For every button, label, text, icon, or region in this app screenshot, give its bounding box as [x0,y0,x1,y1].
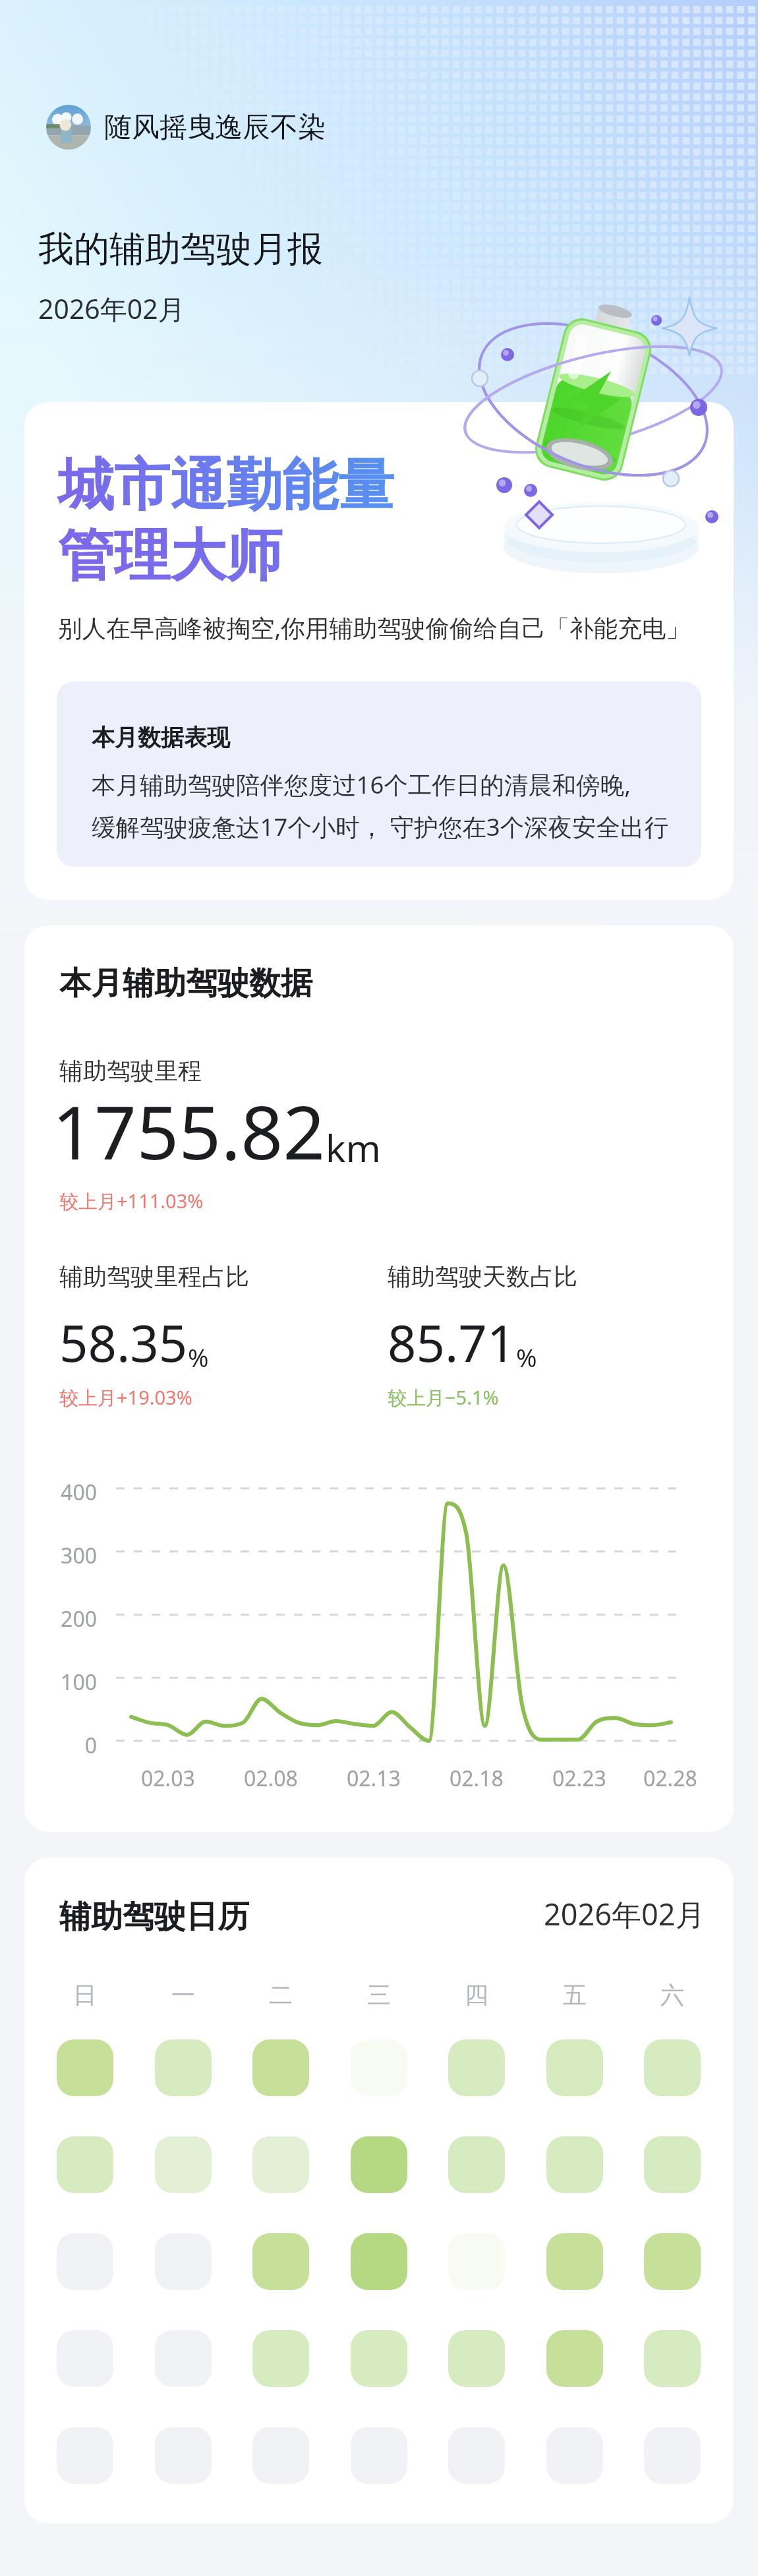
button[interactable] [448,2136,505,2193]
button[interactable] [252,2039,309,2096]
staticText: 较上月−5.1% [388,1384,499,1411]
staticText: 辅助驾驶里程占比 [59,1262,249,1291]
staticText: 辅助驾驶日历 [59,1897,249,1937]
staticText: 三 [367,1980,391,2010]
button[interactable]: 随风摇曳逸辰不染 [46,105,326,150]
staticText: 85.71 [388,1308,516,1377]
button[interactable] [57,2330,113,2387]
staticText: 缓解驾驶疲惫达17个小时， 守护您在3个深夜安全出行 [92,810,669,843]
staticText: 五 [563,1980,587,2010]
staticText: 02.28 [643,1764,697,1793]
button[interactable] [351,2136,407,2193]
staticText: 100 [24,1668,97,1697]
staticText: 四 [465,1980,488,2010]
staticText: 一 [171,1980,195,2010]
staticText: 本月辅助驾驶数据 [59,964,312,1003]
button[interactable] [644,2136,701,2193]
button[interactable] [546,2330,603,2387]
button[interactable] [546,2427,603,2484]
button[interactable] [351,2427,407,2484]
staticText: 较上月+19.03% [59,1384,192,1411]
button[interactable] [155,2136,212,2193]
button[interactable] [351,2330,407,2387]
staticText: 02.13 [347,1764,401,1793]
button[interactable] [252,2427,309,2484]
staticText: 辅助驾驶天数占比 [388,1262,577,1291]
button[interactable] [448,2330,505,2387]
button[interactable] [644,2427,701,2484]
staticText: 本月辅助驾驶陪伴您度过16个工作日的清晨和傍晚, [92,768,631,801]
staticText: 2026年02月 [544,1894,705,1934]
button[interactable] [644,2330,701,2387]
staticText: 58.35 [59,1308,188,1377]
staticText: 02.03 [141,1764,195,1793]
staticText: 02.23 [552,1764,606,1793]
button[interactable] [155,2039,212,2096]
button[interactable] [448,2233,505,2290]
staticText: 2026年02月 [38,290,185,327]
staticText: % [516,1340,537,1374]
staticText: 随风摇曳逸辰不染 [104,110,326,145]
staticText: 我的辅助驾驶月报 [38,227,323,272]
button[interactable] [351,2233,407,2290]
button[interactable] [644,2039,701,2096]
staticText: % [188,1340,209,1374]
staticText: km [326,1122,381,1173]
button[interactable] [252,2330,309,2387]
staticText: 200 [24,1604,97,1633]
button[interactable] [448,2427,505,2484]
staticText: 城市通勤能量 [58,450,394,521]
button[interactable] [546,2039,603,2096]
button[interactable] [546,2233,603,2290]
staticText: 1755.82 [52,1080,326,1181]
button[interactable] [57,2136,113,2193]
staticText: 0 [24,1731,97,1760]
staticText: 02.18 [450,1764,504,1793]
staticText: 管理大师 [58,521,282,591]
button[interactable] [155,2233,212,2290]
button[interactable] [57,2233,113,2290]
staticText: 辅助驾驶里程 [59,1056,202,1086]
staticText: 六 [660,1980,684,2010]
staticText: 较上月+111.03% [59,1188,204,1214]
button[interactable] [57,2427,113,2484]
button[interactable] [644,2233,701,2290]
button[interactable] [351,2039,407,2096]
staticText: 400 [24,1478,97,1507]
button[interactable] [546,2136,603,2193]
staticText: 02.08 [244,1764,298,1793]
button[interactable] [252,2233,309,2290]
staticText: 本月数据表现 [92,723,230,752]
button[interactable] [252,2136,309,2193]
button[interactable] [57,2039,113,2096]
staticText: 别人在早高峰被掏空,你用辅助驾驶偷偷给自己「补能充电」 [58,611,690,644]
staticText: 日 [73,1980,97,2010]
button[interactable] [448,2039,505,2096]
staticText: 二 [269,1980,293,2010]
button[interactable] [155,2427,212,2484]
button[interactable] [155,2330,212,2387]
staticText: 300 [24,1541,97,1570]
